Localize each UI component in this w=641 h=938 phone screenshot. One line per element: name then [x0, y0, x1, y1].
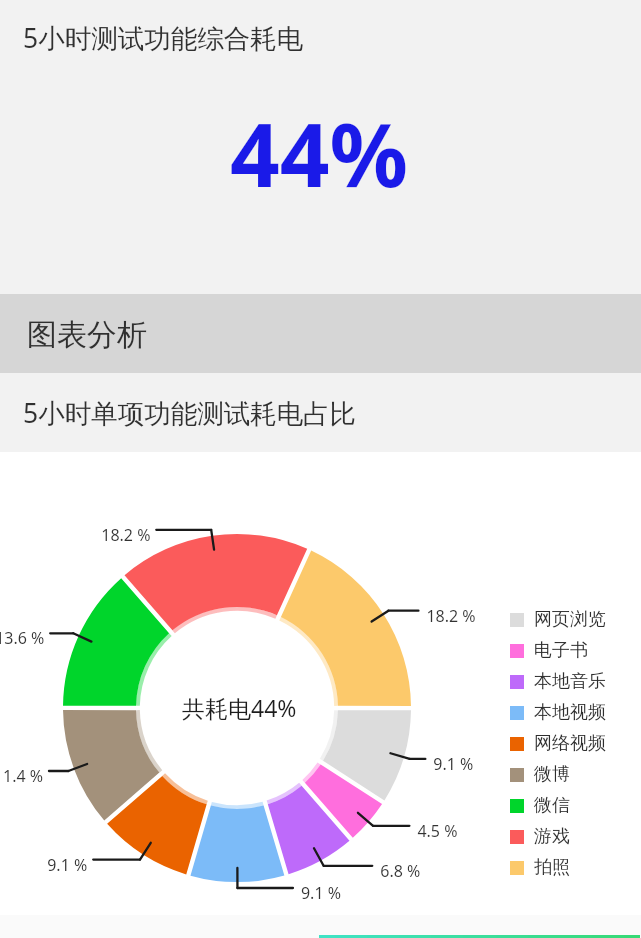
- button[interactable]: 本地音乐: [510, 666, 606, 697]
- staticText: 微信: [534, 794, 570, 817]
- staticText: 本地音乐: [534, 670, 606, 693]
- button[interactable]: 网页浏览: [510, 604, 606, 635]
- staticText: 网络视频: [534, 732, 606, 755]
- staticText: 图表分析: [27, 316, 147, 354]
- staticText: 5小时单项功能测试耗电占比: [23, 395, 357, 431]
- staticText: 游戏: [534, 825, 570, 848]
- staticText: 共耗电44%: [182, 692, 297, 723]
- button[interactable]: 微博: [510, 759, 570, 790]
- staticText: 5小时测试功能综合耗电: [23, 20, 304, 56]
- button[interactable]: 游戏: [510, 821, 570, 852]
- staticText: 网页浏览: [534, 608, 606, 631]
- button[interactable]: 微信: [510, 790, 570, 821]
- button[interactable]: 本地视频: [510, 697, 606, 728]
- staticText: 微博: [534, 763, 570, 786]
- button[interactable]: 网络视频: [510, 728, 606, 759]
- button[interactable]: 拍照: [510, 852, 570, 883]
- staticText: 拍照: [534, 856, 570, 879]
- staticText: 本地视频: [534, 701, 606, 724]
- button[interactable]: 电子书: [510, 635, 588, 666]
- staticText: 电子书: [534, 639, 588, 662]
- staticText: 44%: [230, 94, 409, 212]
